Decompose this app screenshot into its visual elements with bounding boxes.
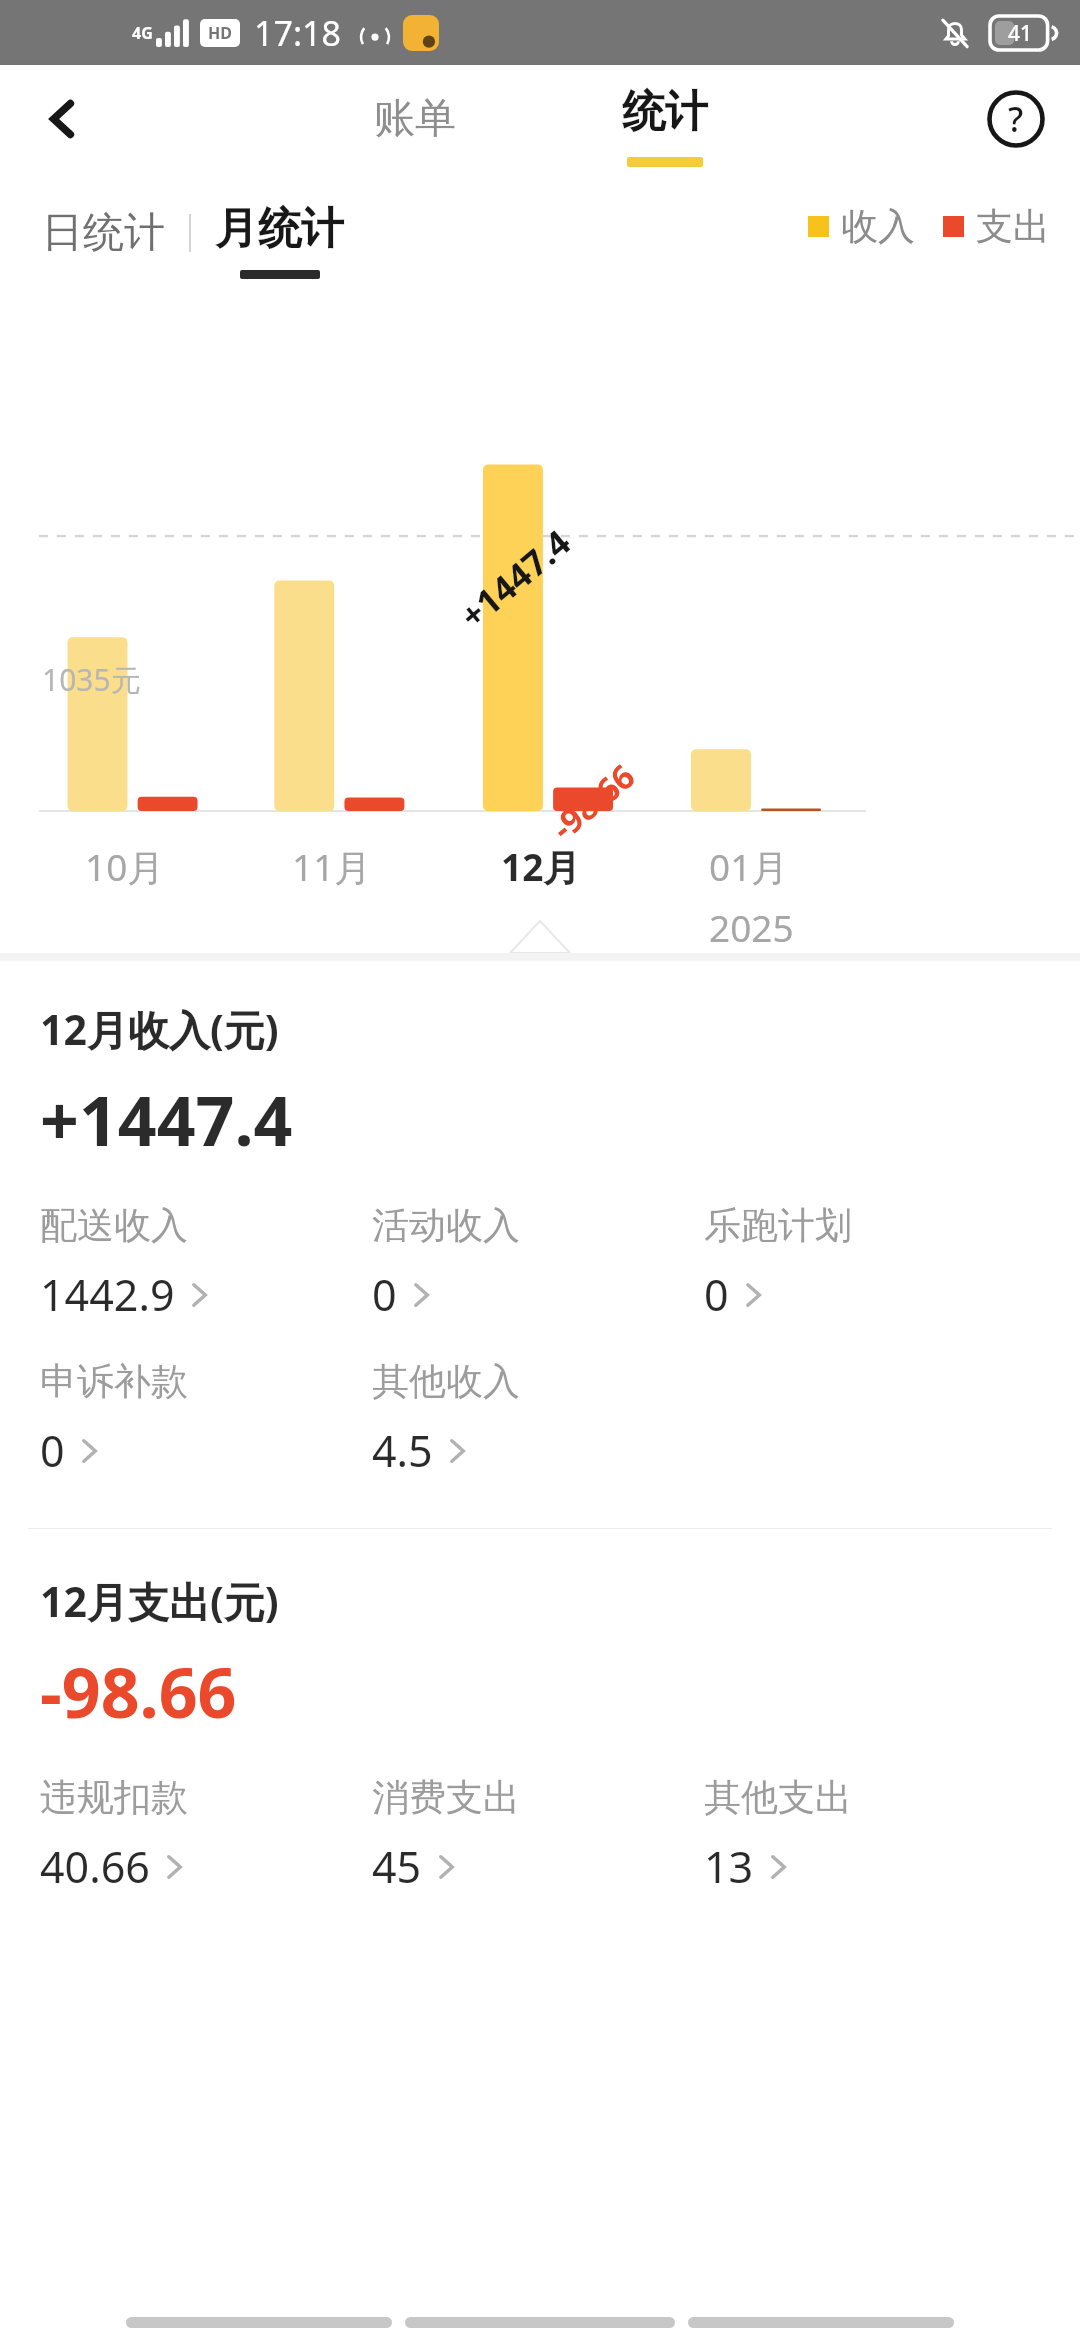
staticText: 1035元 [42,659,141,700]
button[interactable]: 活动收入 [372,1202,704,1324]
staticText: 41 [1008,19,1033,48]
staticText: 配送收入 [40,1202,188,1249]
staticText: 17:18 [254,10,341,56]
staticText: 2025 [709,902,794,952]
staticText: 活动收入 [372,1202,520,1249]
staticText: 月统计 [215,202,344,256]
button[interactable]: 申诉补款 [40,1358,372,1480]
button[interactable]: 乐跑计划 [704,1202,1004,1324]
staticText: 0 [704,1265,729,1324]
staticText: 账单 [374,93,456,145]
staticText: 其他收入 [372,1358,520,1405]
staticText: ? [1008,96,1024,142]
staticText: 消费支出 [372,1774,520,1821]
staticText: 12月支出(元) [40,1573,279,1629]
staticText: 4G [132,22,153,44]
staticText: 其他支出 [704,1774,852,1821]
staticText: +1447.4 [40,1073,293,1166]
staticText: HD [208,22,232,44]
staticText: 45 [372,1837,422,1896]
staticText: 乐跑计划 [704,1202,852,1249]
button[interactable]: Help [976,79,1056,159]
staticText: 0 [40,1421,65,1480]
staticText: 13 [704,1837,754,1896]
staticText: 日统计 [42,207,165,259]
staticText: -98.66 [542,753,644,850]
button[interactable]: 日统计 [42,173,165,293]
staticText: 12月 [501,841,581,892]
staticText: 10月 [85,841,165,892]
button[interactable]: 消费支出 [372,1774,704,1896]
staticText: 1442.9 [40,1265,175,1324]
staticText: 支出 [976,203,1050,250]
staticText: 收入 [841,203,915,250]
button[interactable]: Back [24,81,100,157]
staticText: 40.66 [40,1837,150,1896]
staticText: 12月收入(元) [40,1001,279,1057]
staticText: 01月 [709,841,789,892]
button[interactable]: 其他支出 [704,1774,1004,1896]
button[interactable]: 月统计 [215,173,344,293]
staticText: 11月 [292,841,372,892]
staticText: 0 [372,1265,397,1324]
button[interactable]: 账单 [315,65,515,173]
staticText: 违规扣款 [40,1774,188,1821]
staticText: 申诉补款 [40,1358,188,1405]
button[interactable]: 配送收入 [40,1202,372,1324]
staticText: 统计 [622,85,708,139]
button[interactable]: 其他收入 [372,1358,704,1480]
staticText: -98.66 [40,1645,237,1738]
button[interactable]: 统计 [565,65,765,173]
button[interactable]: 违规扣款 [40,1774,372,1896]
staticText: 4.5 [372,1421,433,1480]
staticText: +1447.4 [450,519,580,639]
